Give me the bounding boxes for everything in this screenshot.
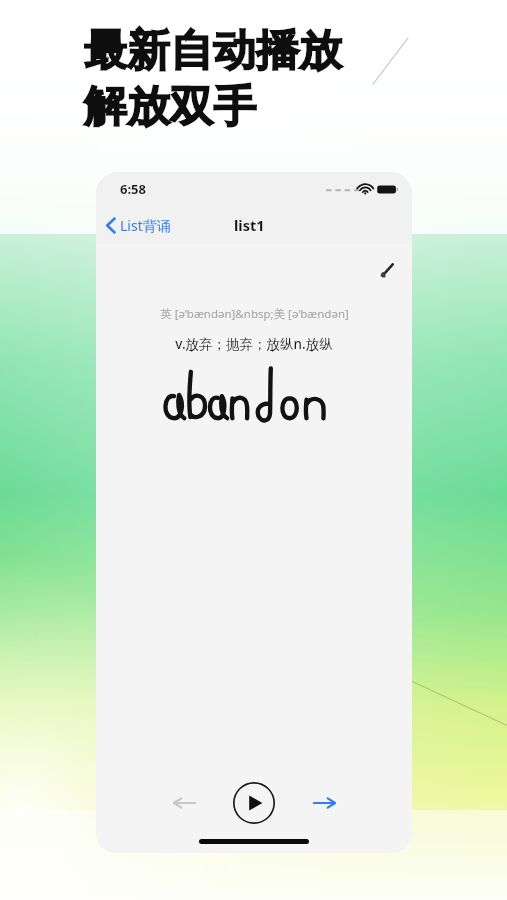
button[interactable]: Previous word [164,783,204,823]
button[interactable]: Play [230,779,278,827]
button[interactable]: List背诵 [96,211,183,240]
staticText: list1 [234,215,265,235]
staticText: List背诵 [120,216,171,235]
staticText: v.放弃；抛弃；放纵n.放纵 [175,335,333,353]
staticText: 英 [əˈbændən]&nbsp;美 [əˈbændən] [160,306,349,322]
staticText: 6:58 [120,180,146,198]
staticText: 最新自动播放 [84,24,342,78]
button[interactable]: Edit handwriting [371,256,401,286]
button[interactable]: Next word [304,783,344,823]
staticText: 解放双手 [84,80,256,134]
